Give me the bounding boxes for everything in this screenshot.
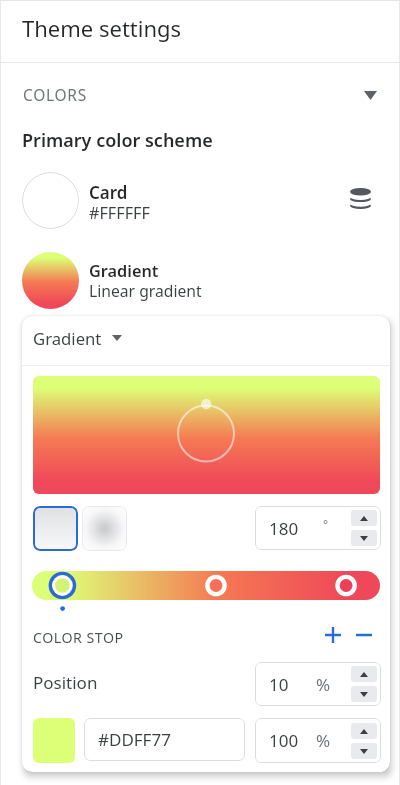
- button[interactable]: 100: [255, 718, 381, 763]
- staticText: %: [316, 729, 331, 752]
- button[interactable]: Decrease °: [351, 530, 377, 546]
- staticText: 10: [269, 673, 289, 696]
- staticText: °: [323, 516, 329, 532]
- button[interactable]: Decrease %: [351, 743, 377, 759]
- button[interactable]: Gradient: [0, 250, 400, 312]
- button[interactable]: Increase °: [351, 510, 377, 526]
- button[interactable]: #DDFF77: [84, 718, 245, 761]
- staticText: COLORS: [23, 84, 87, 105]
- staticText: 100: [269, 729, 299, 752]
- staticText: #DDFF77: [98, 728, 171, 751]
- button[interactable]: Layers: [344, 182, 377, 215]
- button[interactable]: Card: [0, 170, 400, 232]
- button[interactable]: Gradient preview: [33, 376, 380, 494]
- button[interactable]: 10: [255, 662, 381, 706]
- staticText: Linear gradient: [89, 280, 202, 301]
- staticText: Primary color scheme: [22, 128, 213, 153]
- staticText: Card: [89, 181, 128, 204]
- button[interactable]: Gradient stops: [32, 571, 380, 600]
- button[interactable]: Add color stop: [319, 621, 347, 649]
- staticText: #FFFFFF: [89, 202, 150, 224]
- button[interactable]: Stop color swatch: [33, 718, 75, 763]
- button[interactable]: 180: [255, 506, 381, 550]
- button[interactable]: COLORS: [0, 63, 400, 113]
- button[interactable]: Increase %: [351, 723, 377, 739]
- staticText: Gradient: [33, 327, 102, 350]
- staticText: COLOR STOP: [33, 628, 124, 647]
- staticText: Gradient: [89, 260, 159, 282]
- button[interactable]: Radial gradient type: [82, 506, 127, 551]
- button[interactable]: Remove color stop: [350, 621, 378, 649]
- button[interactable]: Decrease %: [351, 686, 377, 702]
- staticText: %: [316, 673, 331, 696]
- staticText: 180: [269, 517, 299, 540]
- staticText: Position: [33, 671, 98, 694]
- button[interactable]: Gradient: [22, 316, 390, 362]
- button[interactable]: Linear gradient type: [33, 506, 78, 551]
- staticText: Theme settings: [22, 13, 182, 43]
- button[interactable]: Increase %: [351, 666, 377, 682]
